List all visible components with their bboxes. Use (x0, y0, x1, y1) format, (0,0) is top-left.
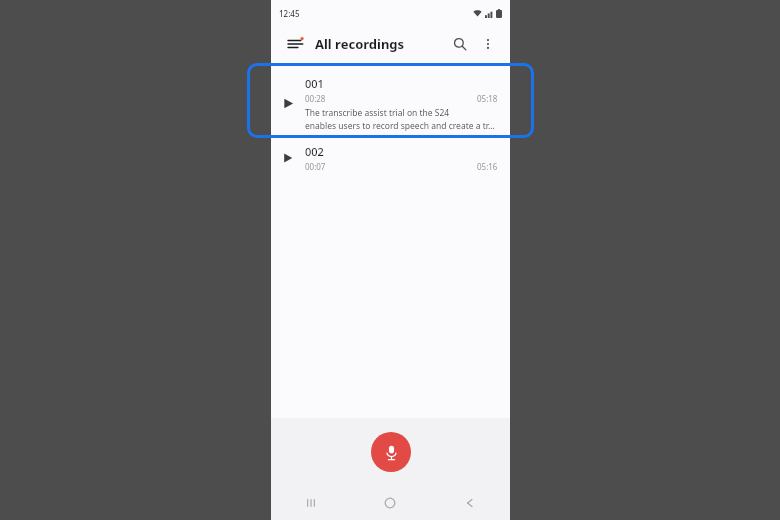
button[interactable]: More options (476, 32, 500, 56)
button[interactable]: Play (271, 71, 510, 136)
staticText: 002 (305, 144, 324, 159)
button[interactable]: Home (350, 486, 430, 520)
button[interactable]: Search (448, 32, 472, 56)
staticText: 12:45 (279, 8, 300, 19)
button[interactable]: Menu (285, 33, 307, 55)
button[interactable]: Record (371, 432, 411, 472)
button[interactable]: Back (430, 486, 510, 520)
staticText: 05:18 (477, 93, 498, 104)
staticText: The transcribe assist trial on the S24 (305, 107, 450, 119)
staticText: 05:16 (477, 161, 498, 172)
staticText: 00:07 (305, 161, 326, 172)
staticText: 00:28 (305, 93, 326, 104)
staticText: 001 (305, 76, 324, 91)
staticText: All recordings (315, 35, 405, 53)
other: Play (283, 153, 293, 163)
staticText: enables users to record speech and creat… (305, 120, 495, 132)
button[interactable]: Play (271, 136, 510, 180)
other: Play (283, 98, 294, 109)
button[interactable]: Recents (271, 486, 350, 520)
